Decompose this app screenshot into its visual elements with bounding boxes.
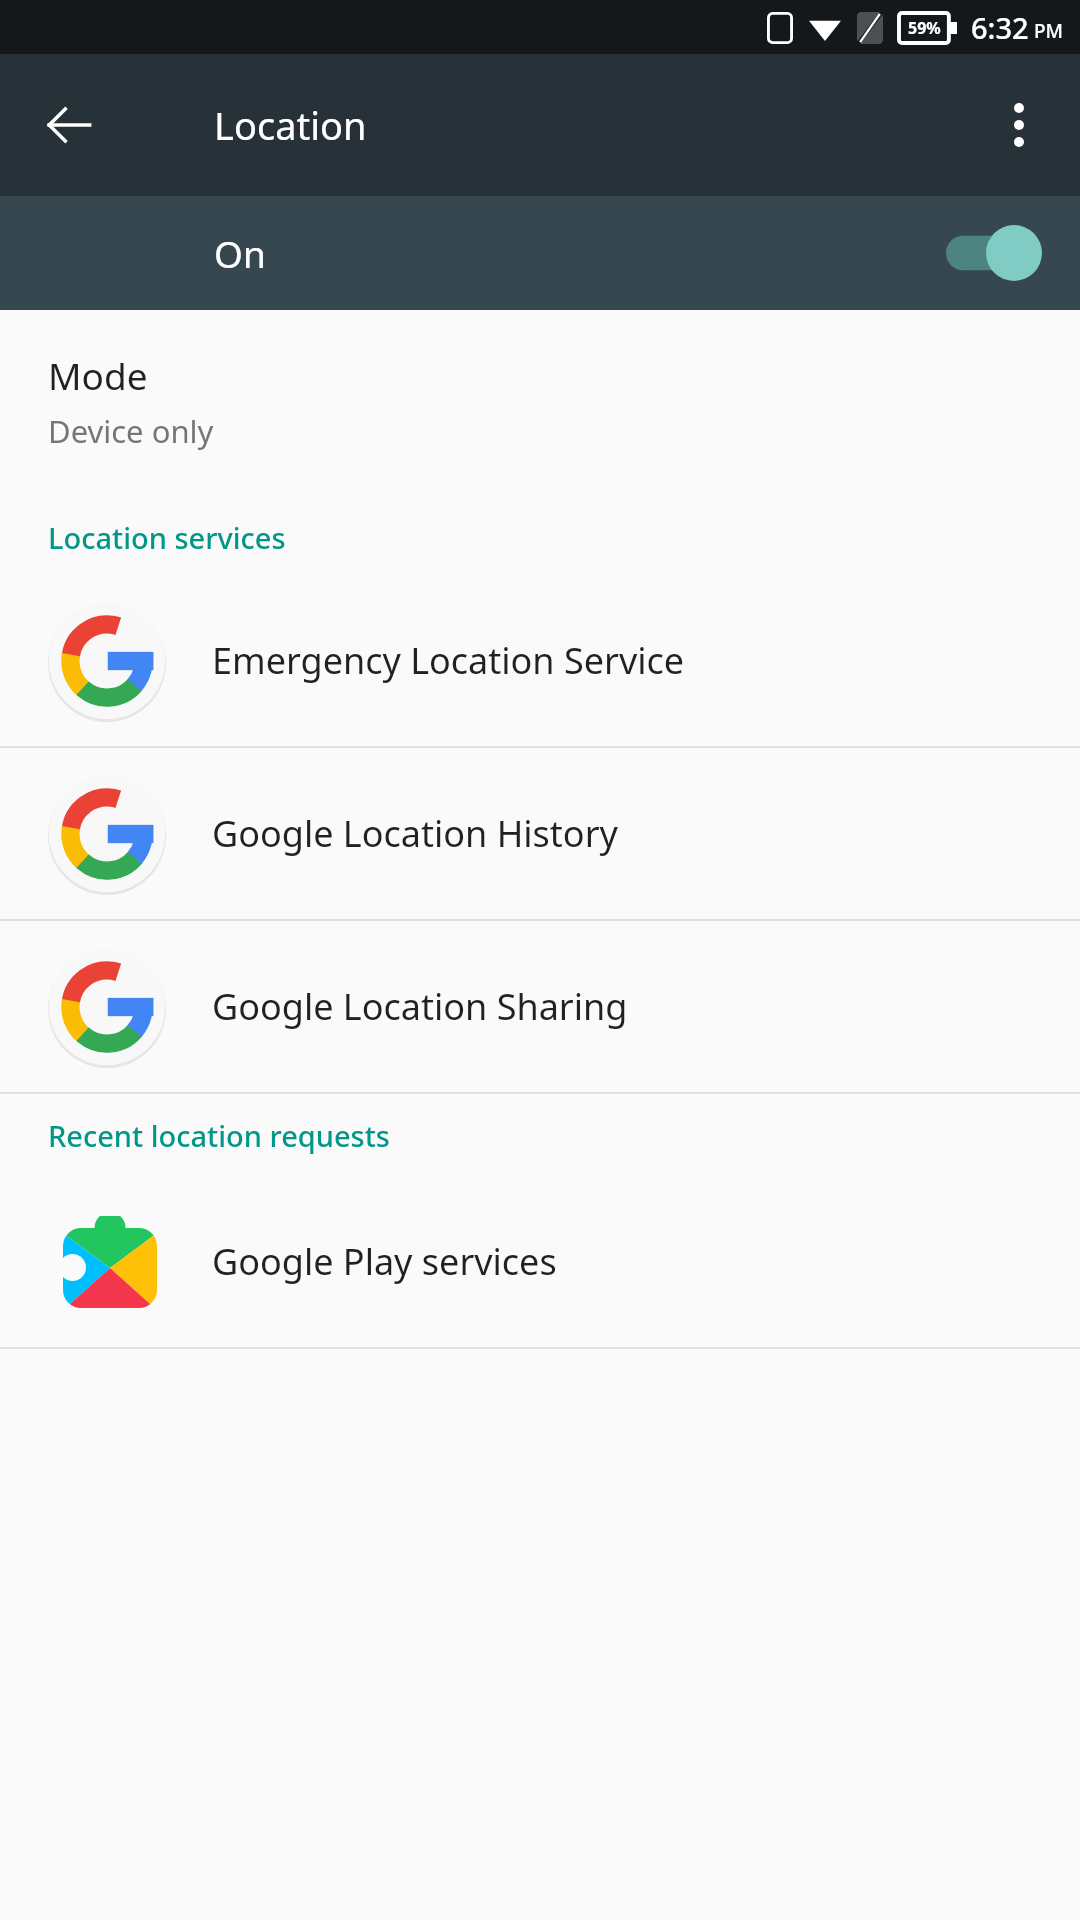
button[interactable]: Google Location Sharing (0, 921, 1080, 1092)
button[interactable]: More options (978, 84, 1060, 166)
button[interactable]: Google Play services (0, 1175, 1080, 1347)
staticText: Google Location Sharing (212, 982, 628, 1031)
staticText: On (214, 228, 946, 278)
staticText: Location (214, 99, 367, 151)
button[interactable]: Mode (0, 310, 1080, 474)
button[interactable]: On (0, 196, 1080, 310)
staticText: 59% (908, 17, 941, 39)
button[interactable]: Emergency Location Service (0, 575, 1080, 746)
staticText: PM (1034, 18, 1064, 44)
staticText: Recent location requests (48, 1116, 1032, 1155)
staticText: Google Play services (212, 1237, 557, 1286)
staticText: Mode (48, 350, 148, 400)
button[interactable]: Back (28, 84, 110, 166)
staticText: 6:32 (971, 8, 1029, 47)
staticText: Emergency Location Service (212, 636, 685, 685)
staticText: Device only (48, 410, 214, 452)
staticText: Google Location History (212, 809, 618, 858)
staticText: Location services (48, 518, 1032, 557)
button[interactable]: Google Location History (0, 748, 1080, 919)
